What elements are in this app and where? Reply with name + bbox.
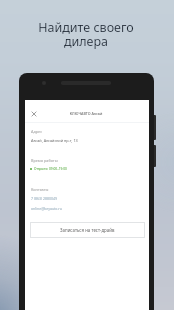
button[interactable]: 7 (863) 2880049 bbox=[31, 196, 57, 201]
staticText: Адрес bbox=[31, 129, 42, 134]
button[interactable]: Close bbox=[28, 108, 40, 120]
staticText: Аксай, Аксайский пр-т, 13 bbox=[31, 138, 78, 143]
staticText: Записаться на тест-драйв bbox=[60, 227, 115, 233]
staticText: Время работы bbox=[31, 158, 58, 163]
staticText: КЛЮЧАВТО Аксай bbox=[24, 111, 148, 116]
staticText: Контакты bbox=[31, 187, 49, 192]
button[interactable]: online@keyauto.ru bbox=[31, 206, 62, 211]
button[interactable]: Записаться на тест-драйв bbox=[30, 222, 145, 238]
staticText: Открыто: 09:00–19:00 bbox=[34, 167, 67, 171]
staticText: Найдите своего дилера bbox=[0, 19, 173, 50]
